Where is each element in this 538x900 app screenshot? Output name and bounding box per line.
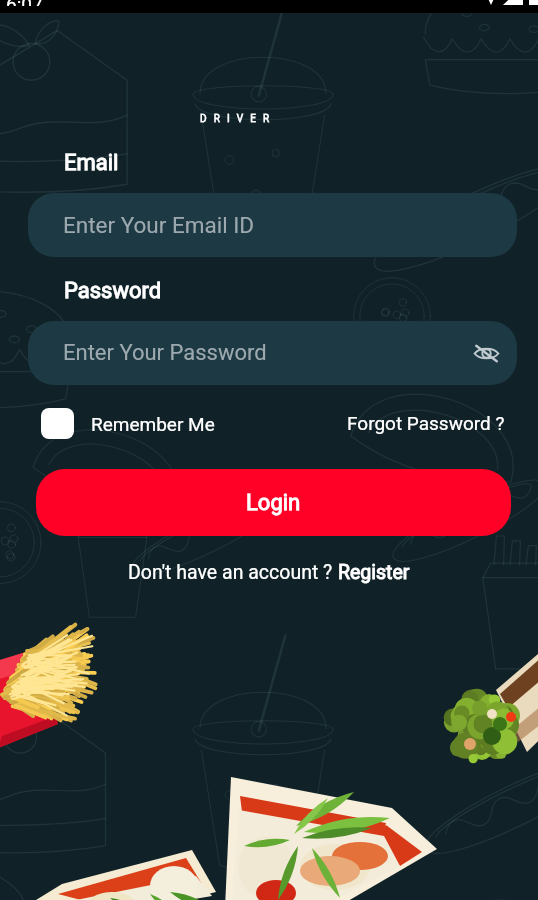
staticText: Remember Me xyxy=(91,413,215,435)
button[interactable]: Show password xyxy=(469,336,503,370)
staticText: D R I V E R xyxy=(200,113,272,125)
button[interactable]: Register xyxy=(338,561,410,584)
staticText: Enter Your Password xyxy=(63,340,267,366)
button[interactable]: Forgot Password ? xyxy=(347,412,505,434)
button[interactable]: Enter Your Email ID xyxy=(28,193,517,257)
staticText: Password xyxy=(64,278,162,304)
button[interactable]: Remember Me xyxy=(41,408,215,439)
staticText: Email xyxy=(64,150,119,176)
button[interactable]: Login xyxy=(36,469,511,536)
staticText: Login xyxy=(246,490,301,516)
staticText: Enter Your Email ID xyxy=(63,212,255,238)
button[interactable]: Enter Your Password xyxy=(28,321,517,385)
staticText: 6:07 xyxy=(6,0,43,6)
staticText: Don't have an account ? xyxy=(128,561,338,584)
